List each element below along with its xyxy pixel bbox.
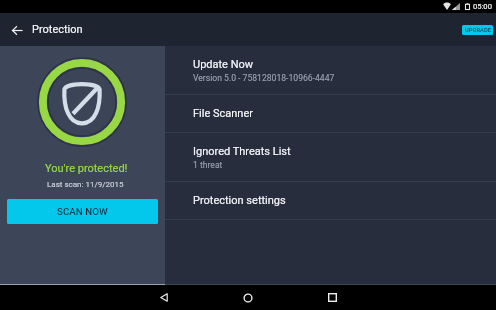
button[interactable]: Recent apps [313, 285, 351, 310]
staticText: UPGRADE [465, 27, 491, 34]
staticText: 05:00 [473, 2, 492, 11]
button[interactable]: Update Now [165, 46, 496, 94]
staticText: 1 threat [193, 160, 223, 170]
staticText: You're protected! [45, 162, 128, 175]
button[interactable]: Ignored Threats List [165, 133, 496, 181]
staticText: Ignored Threats List [193, 145, 291, 158]
button[interactable]: Protection settings [165, 182, 496, 219]
staticText: Last scan: 11/9/2015 [47, 180, 124, 189]
button[interactable]: UPGRADE [462, 25, 493, 35]
staticText: File Scanner [193, 107, 253, 120]
button[interactable]: Home [229, 285, 267, 310]
button[interactable]: File Scanner [165, 95, 496, 132]
button[interactable]: Back [145, 285, 183, 310]
staticText: SCAN NOW [57, 206, 108, 217]
staticText: Protection settings [193, 194, 286, 207]
staticText: Version 5.0 - 758128018-10966-4447 [193, 73, 335, 83]
button[interactable]: Back [10, 23, 24, 37]
button[interactable]: SCAN NOW [7, 199, 158, 224]
staticText: Update Now [193, 58, 254, 71]
staticText: Protection [32, 23, 83, 36]
